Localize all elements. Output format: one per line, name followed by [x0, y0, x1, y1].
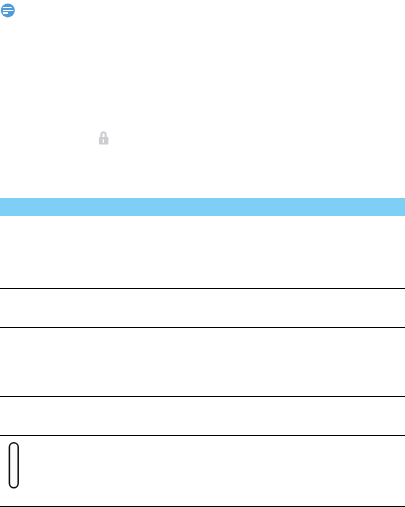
button[interactable]: Text field: [6, 438, 23, 492]
button[interactable]: Menu: [0, 0, 17, 17]
